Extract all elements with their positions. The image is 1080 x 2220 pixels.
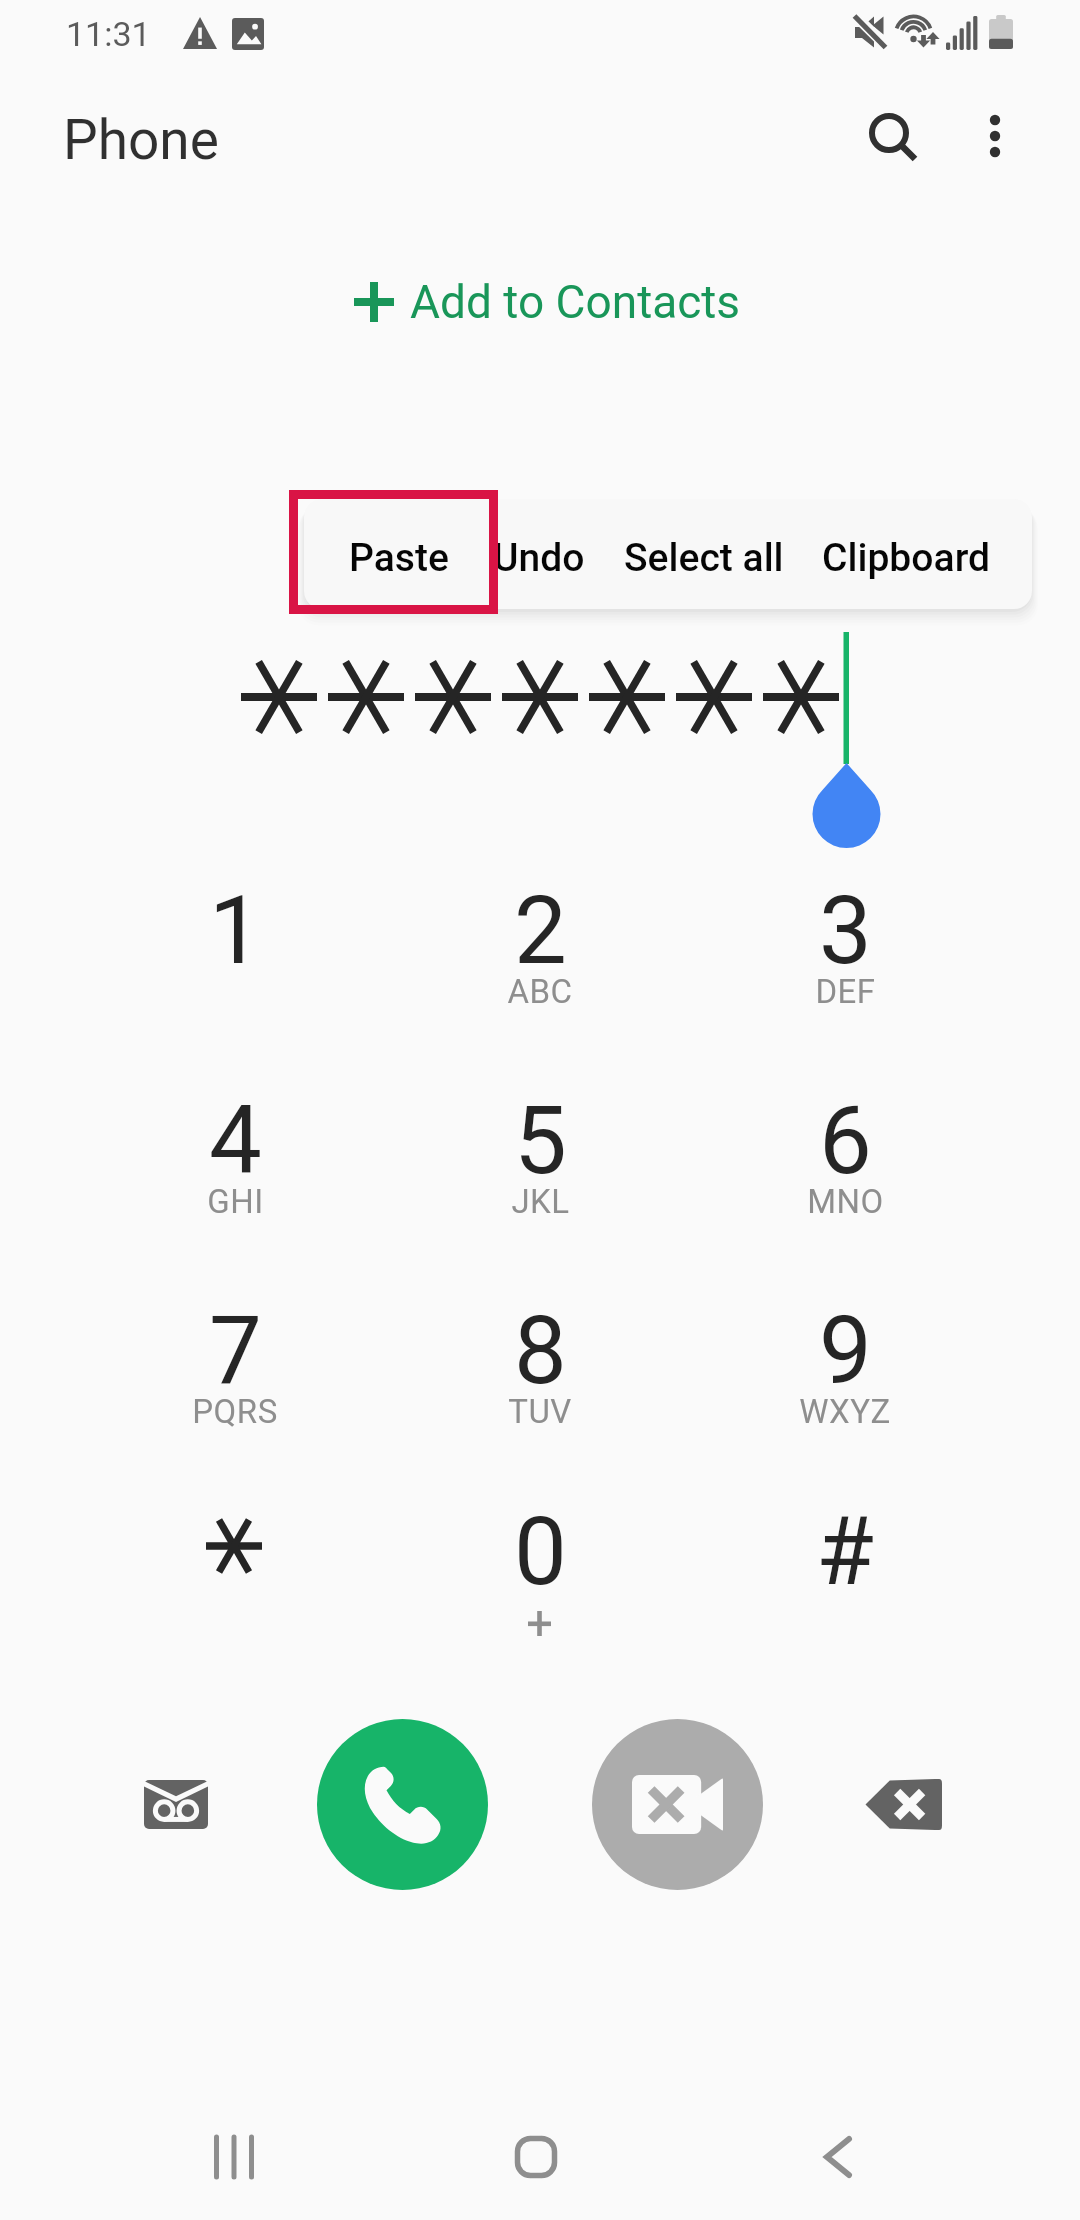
- button[interactable]: 3: [710, 848, 980, 1033]
- button[interactable]: Video call: [592, 1719, 763, 1890]
- staticText: GHI: [207, 1182, 264, 1221]
- staticText: Clipboard: [822, 535, 991, 581]
- staticText: WXYZ: [799, 1392, 891, 1431]
- button[interactable]: Paste: [304, 503, 494, 613]
- button[interactable]: 6: [710, 1058, 980, 1243]
- button[interactable]: Clipboard: [801, 503, 1011, 613]
- staticText: Select all: [624, 535, 784, 581]
- staticText: ABC: [507, 972, 573, 1011]
- staticText: 6: [819, 1086, 872, 1196]
- staticText: 11:31: [66, 14, 151, 54]
- staticText: Paste: [349, 535, 449, 581]
- staticText: 3: [819, 876, 872, 986]
- staticText: DEF: [815, 972, 876, 1011]
- button[interactable]: Backspace: [838, 1739, 968, 1869]
- staticText: Add to Contacts: [410, 275, 741, 329]
- staticText: TUV: [508, 1392, 572, 1431]
- staticText: 2: [514, 876, 567, 986]
- staticText: Undo: [493, 535, 585, 581]
- staticText: MNO: [807, 1182, 884, 1221]
- button[interactable]: Add to Contacts: [330, 258, 755, 346]
- button[interactable]: 5: [405, 1058, 675, 1243]
- button[interactable]: 7: [100, 1268, 370, 1453]
- button[interactable]: Undo: [479, 503, 599, 613]
- button[interactable]: Call: [317, 1719, 488, 1890]
- button[interactable]: Home: [476, 2097, 596, 2217]
- button[interactable]: Search: [839, 83, 939, 183]
- button[interactable]: 1: [100, 848, 370, 1033]
- staticText: 9: [819, 1296, 872, 1406]
- staticText: Phone: [63, 108, 219, 172]
- staticText: 7: [209, 1296, 262, 1406]
- button[interactable]: 2: [405, 848, 675, 1033]
- button[interactable]: Select all: [599, 503, 809, 613]
- staticText: 0: [514, 1497, 567, 1607]
- staticText: 5: [514, 1086, 567, 1196]
- button[interactable]: 0: [405, 1469, 675, 1654]
- staticText: 1: [209, 876, 262, 986]
- staticText: PQRS: [192, 1392, 278, 1431]
- button[interactable]: Recents: [174, 2097, 294, 2217]
- staticText: 8: [514, 1296, 567, 1406]
- button[interactable]: More options: [945, 83, 1045, 183]
- button[interactable]: 8: [405, 1268, 675, 1453]
- staticText: #: [816, 1497, 874, 1607]
- staticText: 4: [209, 1086, 262, 1196]
- button[interactable]: [100, 1469, 370, 1654]
- button[interactable]: Back: [778, 2097, 898, 2217]
- button[interactable]: 9: [710, 1268, 980, 1453]
- staticText: JKL: [511, 1182, 570, 1221]
- button[interactable]: Voicemail: [111, 1739, 241, 1869]
- button[interactable]: #: [710, 1469, 980, 1654]
- button[interactable]: 4: [100, 1058, 370, 1243]
